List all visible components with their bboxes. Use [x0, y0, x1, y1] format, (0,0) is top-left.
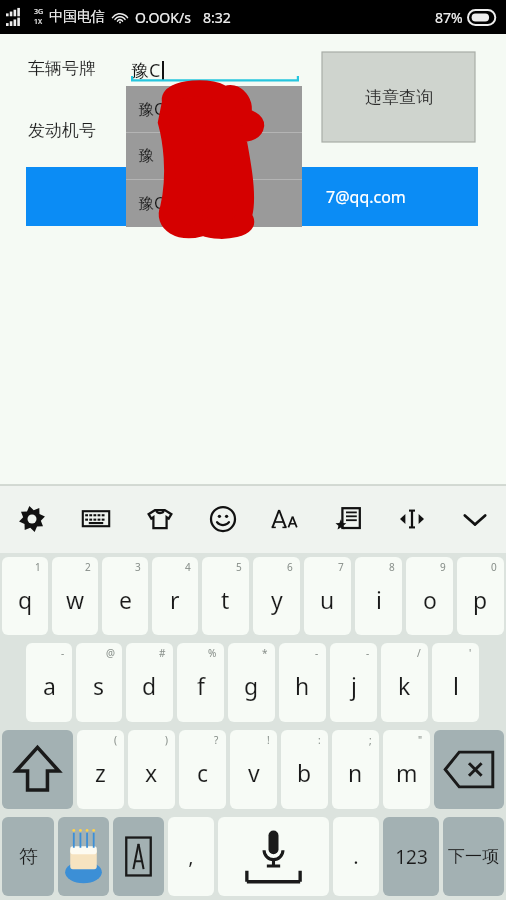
button[interactable]: % [177, 643, 224, 722]
staticText: - [366, 646, 370, 660]
button[interactable]: 下一项 [443, 817, 504, 896]
staticText: e [119, 584, 132, 615]
button[interactable]: Backspace [434, 730, 504, 809]
button[interactable]: 123 [383, 817, 439, 896]
staticText: 6 [287, 560, 293, 574]
button[interactable]: 4 [152, 557, 198, 635]
staticText: k [398, 670, 411, 701]
button[interactable]: Cursor control [380, 485, 443, 553]
button[interactable]: 豫C [126, 86, 302, 132]
staticText: / [417, 646, 421, 660]
staticText: 0 [491, 560, 497, 574]
staticText: s [93, 670, 105, 701]
button[interactable]: 3 [102, 557, 148, 635]
button[interactable]: 违章查询 [322, 52, 475, 142]
staticText: O.OOK/s [135, 8, 191, 27]
button[interactable]: * [228, 643, 275, 722]
button[interactable]: 1 [2, 557, 48, 635]
button[interactable]: " [383, 730, 430, 809]
staticText: ? [214, 733, 219, 747]
staticText: . [353, 843, 359, 870]
staticText: 9 [440, 560, 446, 574]
staticText: 豫C [138, 98, 165, 120]
staticText: 发动机号 [28, 120, 96, 141]
button[interactable]: 5 [202, 557, 249, 635]
staticText: , [188, 843, 194, 870]
staticText: l [453, 670, 459, 701]
button[interactable]: 0 [457, 557, 504, 635]
staticText: j [351, 670, 357, 701]
staticText: * [262, 646, 268, 660]
button[interactable]: Settings [0, 485, 64, 553]
staticText: d [142, 670, 157, 701]
staticText: 5 [236, 560, 242, 574]
staticText: 8 [389, 560, 395, 574]
button[interactable]: - [26, 643, 72, 722]
button[interactable]: Input language [113, 817, 164, 896]
button[interactable]: ( [77, 730, 124, 809]
button[interactable]: 发动机号 [28, 120, 96, 141]
staticText: p [473, 584, 488, 615]
button[interactable]: 符 [2, 817, 54, 896]
staticText: 豫 [138, 146, 154, 166]
button[interactable]: / [381, 643, 428, 722]
button[interactable]: 7@qq.com [26, 167, 478, 226]
button[interactable]: Emoji [191, 485, 254, 553]
button[interactable]: 7 [304, 557, 351, 635]
staticText: i [376, 584, 382, 615]
button[interactable]: ? [179, 730, 226, 809]
staticText: 豫C [131, 58, 161, 83]
staticText: 87% [435, 8, 463, 27]
staticText: u [320, 584, 335, 615]
staticText: % [208, 646, 217, 660]
button[interactable]: ) [128, 730, 175, 809]
staticText: - [315, 646, 319, 660]
staticText: 违章查询 [365, 87, 433, 108]
button[interactable]: - [279, 643, 326, 722]
button[interactable]: 豫C [126, 180, 302, 226]
button[interactable]: Shift [2, 730, 73, 809]
staticText: 符 [19, 845, 38, 869]
button[interactable]: 2 [52, 557, 98, 635]
staticText: 中国电信 [49, 8, 105, 26]
staticText: v [248, 757, 260, 788]
staticText: ' [469, 646, 472, 660]
staticText: ) [165, 733, 168, 747]
button[interactable]: . [333, 817, 379, 896]
button[interactable]: 6 [253, 557, 300, 635]
button[interactable]: 9 [406, 557, 453, 635]
button[interactable]: # [126, 643, 173, 722]
staticText: n [348, 757, 363, 788]
button[interactable]: 豫C [126, 86, 302, 227]
button[interactable]: Keyboard layout [64, 485, 128, 553]
button[interactable]: Hide keyboard [443, 485, 506, 553]
button[interactable]: : [281, 730, 328, 809]
staticText: 7@qq.com [326, 186, 406, 208]
button[interactable]: - [330, 643, 377, 722]
staticText: r [170, 584, 180, 615]
button[interactable]: 8 [355, 557, 402, 635]
button[interactable]: , [168, 817, 214, 896]
button[interactable]: 豫C [131, 52, 299, 88]
staticText: " [418, 733, 423, 747]
button[interactable]: Space, voice input [218, 817, 329, 896]
button[interactable]: 豫 [126, 133, 302, 179]
staticText: 1X [34, 17, 43, 27]
button[interactable]: ; [332, 730, 379, 809]
staticText: x [145, 757, 158, 788]
button[interactable]: Theme [128, 485, 191, 553]
button[interactable]: Phrases [317, 485, 380, 553]
staticText: h [295, 670, 310, 701]
staticText: 2 [85, 560, 91, 574]
button[interactable]: Emoji [58, 817, 109, 896]
staticText: 车辆号牌 [28, 58, 96, 79]
staticText: # [159, 646, 166, 660]
button[interactable]: ! [230, 730, 277, 809]
button[interactable]: 车辆号牌 [28, 58, 96, 79]
button[interactable]: @ [76, 643, 122, 722]
staticText: 3G [34, 7, 44, 17]
staticText: ; [369, 733, 372, 747]
button[interactable]: ' [432, 643, 479, 722]
button[interactable]: Font size [254, 485, 317, 553]
staticText: 下一项 [448, 846, 499, 867]
